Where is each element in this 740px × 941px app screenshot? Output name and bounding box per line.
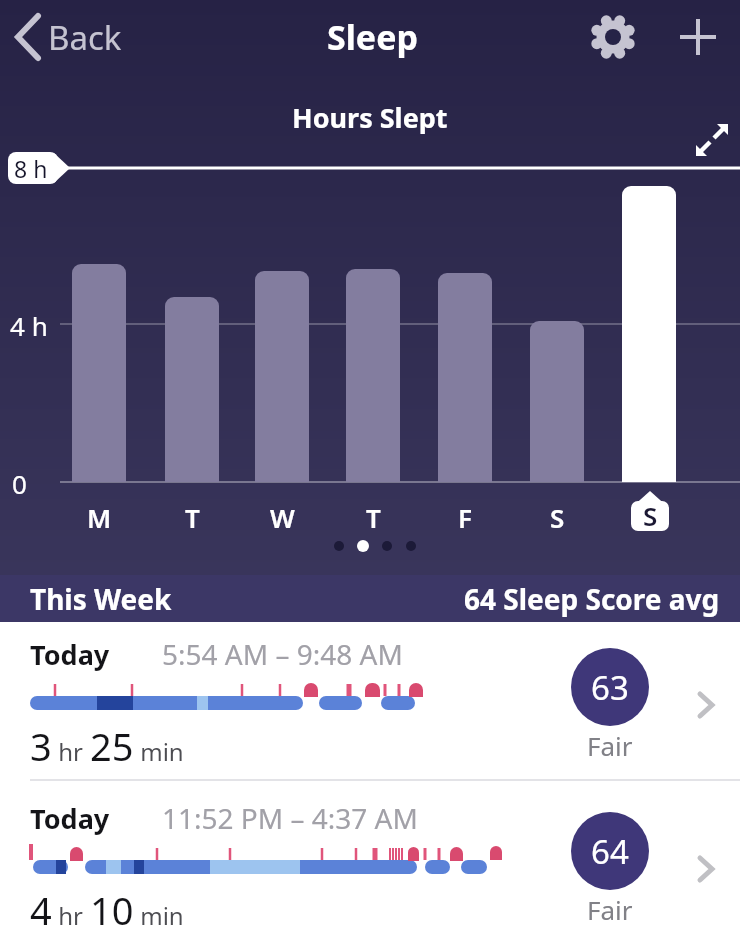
staticText: This Week [30,580,172,618]
staticText: min [134,899,184,932]
staticText: Today [30,636,110,673]
staticText: 4 [30,884,52,936]
staticText: min [134,735,184,768]
staticText: M [87,500,112,534]
staticText: 25 [90,720,134,772]
staticText: T [366,500,381,534]
staticText: 3 [30,720,52,772]
staticText: Back [48,15,122,60]
staticText: Fair [587,892,633,924]
staticText: hr [52,899,90,932]
staticText: 0 [12,466,27,498]
button[interactable] [672,11,724,63]
staticText: Hours Slept [292,99,448,136]
staticText: 4 h [10,308,48,340]
button[interactable]: Today [0,786,740,941]
button[interactable]: Back [6,8,146,66]
staticText: T [185,500,200,534]
staticText: Fair [587,728,633,760]
button[interactable] [588,12,638,62]
staticText: Sleep [327,14,418,60]
staticText: hr [52,735,90,768]
button[interactable]: Today [0,622,740,780]
staticText: 64 Sleep Score avg [464,580,720,618]
staticText: F [458,500,472,534]
staticText: 10 [90,884,134,936]
button[interactable] [690,118,734,162]
staticText: 63 [591,665,629,710]
staticText: 8 h [14,153,48,184]
staticText: Today [30,800,110,837]
staticText: W [270,500,295,534]
staticText: S [550,500,565,534]
staticText: S [643,498,658,530]
staticText: 5:54 AM – 9:48 AM [162,635,403,673]
staticText: 11:52 PM – 4:37 AM [162,799,418,837]
staticText: 64 [591,829,629,874]
